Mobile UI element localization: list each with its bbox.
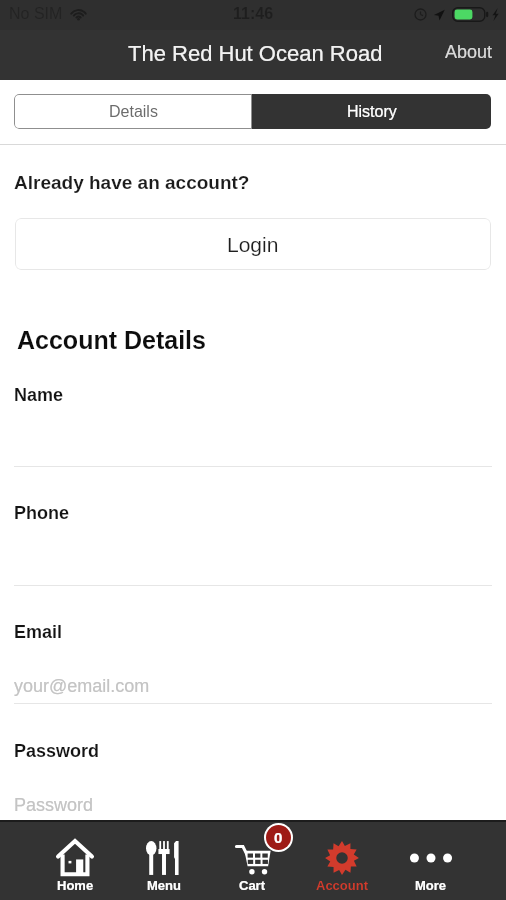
staticText: No SIM (9, 5, 63, 23)
staticText: Name (14, 385, 64, 405)
staticText: Account Details (17, 326, 206, 354)
staticText: More (415, 878, 447, 893)
staticText: Home (57, 878, 94, 893)
staticText: About (445, 42, 493, 62)
staticText: Details (109, 103, 158, 121)
staticText: Password (14, 741, 100, 761)
staticText: Phone (14, 503, 70, 523)
staticText: Account (316, 878, 368, 893)
staticText: Email (14, 622, 63, 642)
button[interactable]: More (386, 822, 475, 900)
staticText: History (347, 103, 397, 121)
staticText: The Red Hut Ocean Road (128, 41, 383, 66)
button[interactable]: About (431, 30, 506, 80)
staticText: 0 (274, 829, 283, 846)
staticText: Menu (147, 878, 181, 893)
button[interactable]: Menu (119, 822, 208, 900)
button[interactable]: Account (297, 822, 386, 900)
button[interactable]: Home (31, 822, 119, 900)
button[interactable]: Password (14, 765, 492, 822)
staticText: Cart (239, 878, 266, 893)
button[interactable]: Details (14, 94, 252, 129)
staticText: 11:46 (233, 5, 274, 23)
staticText: Login (227, 233, 279, 256)
button[interactable]: Login (15, 218, 491, 270)
staticText: your@email.com (14, 676, 150, 696)
staticText: Password (14, 795, 94, 815)
button[interactable]: History (252, 94, 491, 129)
button[interactable]: your@email.com (14, 646, 492, 703)
button[interactable]: Cart (208, 822, 297, 900)
staticText: Already have an account? (14, 172, 250, 193)
